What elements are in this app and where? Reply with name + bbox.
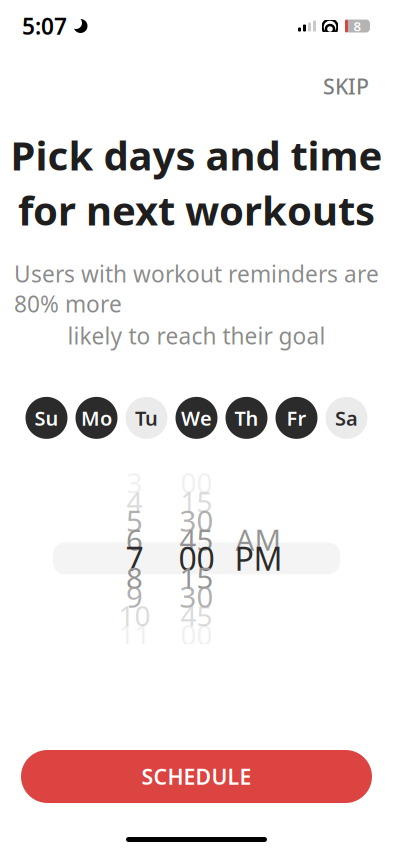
- staticText: 45: [180, 597, 212, 634]
- staticText: PM: [234, 537, 282, 580]
- button[interactable]: Mo: [75, 397, 117, 439]
- staticText: 8: [353, 17, 361, 35]
- staticText: 5:07: [22, 11, 67, 41]
- staticText: 9: [126, 577, 143, 616]
- staticText: 00: [180, 464, 212, 501]
- staticText: 10: [118, 597, 150, 634]
- button[interactable]: We: [175, 397, 217, 439]
- staticText: Users with workout reminders are 80% mor…: [14, 259, 379, 319]
- staticText: 00: [178, 537, 214, 580]
- staticText: Fr: [286, 405, 306, 431]
- staticText: Pick days and time: [10, 128, 382, 181]
- staticText: 00: [180, 616, 212, 653]
- staticText: SKIP: [323, 72, 369, 100]
- staticText: SCHEDULE: [141, 762, 251, 791]
- staticText: for next workouts: [18, 183, 375, 236]
- staticText: 6: [126, 520, 143, 559]
- staticText: Su: [34, 405, 58, 431]
- staticText: 15: [179, 558, 213, 597]
- staticText: 30: [179, 577, 213, 616]
- button[interactable]: SKIP: [309, 62, 383, 110]
- staticText: Th: [234, 405, 258, 431]
- button[interactable]: SCHEDULE: [21, 750, 372, 803]
- staticText: 15: [180, 483, 212, 520]
- staticText: 3: [126, 464, 142, 501]
- staticText: 11: [118, 616, 150, 653]
- staticText: Sa: [335, 405, 358, 431]
- staticText: Tu: [135, 405, 158, 431]
- staticText: 4: [126, 483, 142, 520]
- button[interactable]: Su: [25, 397, 67, 439]
- staticText: 8: [126, 558, 143, 597]
- button[interactable]: Th: [225, 397, 267, 439]
- staticText: 45: [179, 520, 213, 559]
- button[interactable]: Sa: [325, 397, 367, 439]
- staticText: Mo: [81, 405, 112, 431]
- button[interactable]: Tu: [125, 397, 167, 439]
- staticText: We: [181, 405, 212, 431]
- staticText: 5: [126, 501, 143, 540]
- button[interactable]: Fr: [275, 397, 317, 439]
- staticText: AM: [235, 520, 281, 559]
- staticText: likely to reach their goal: [67, 321, 325, 351]
- staticText: 7: [125, 537, 143, 580]
- staticText: 30: [179, 501, 213, 540]
